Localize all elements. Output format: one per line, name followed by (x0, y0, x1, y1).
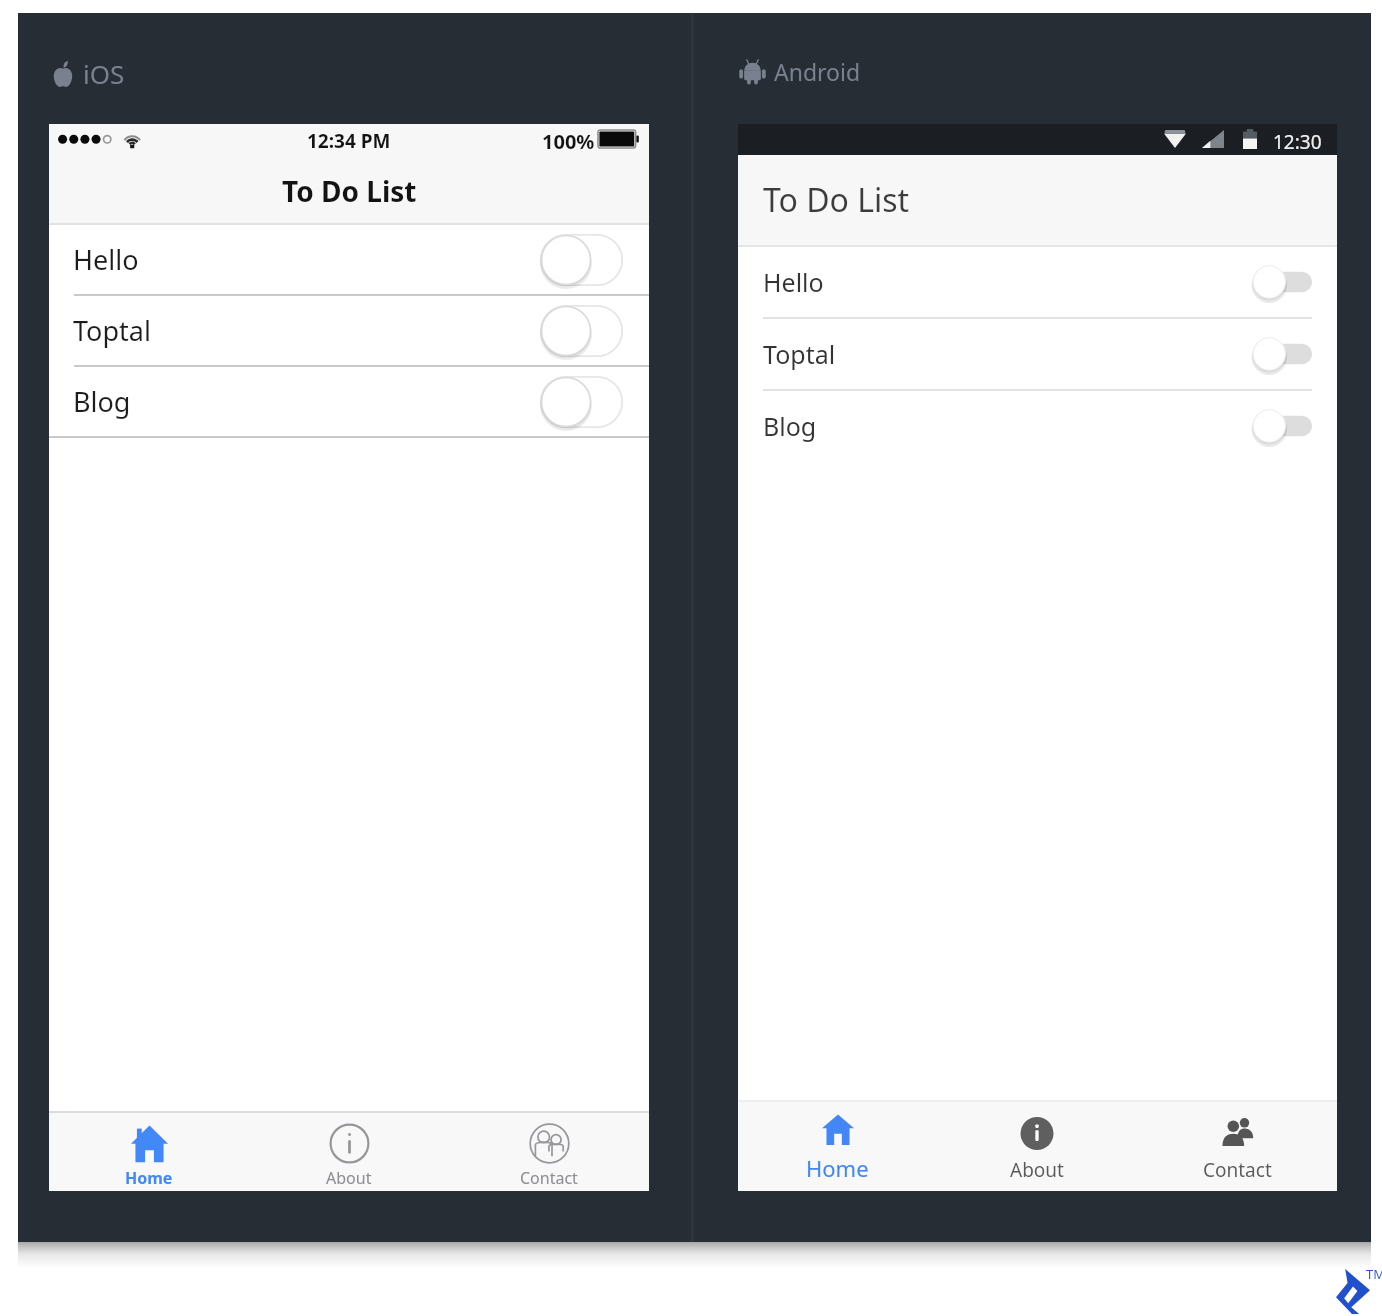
button[interactable]: About (249, 1113, 449, 1191)
button[interactable]: Hello (738, 247, 1337, 317)
button[interactable]: Home (49, 1113, 249, 1191)
button[interactable]: Blog (738, 391, 1337, 461)
staticText: Blog (763, 409, 817, 443)
button[interactable]: Toggle Blog (540, 376, 623, 428)
staticText: Home (806, 1153, 869, 1183)
staticText: Home (125, 1167, 173, 1189)
staticText: Hello (763, 265, 824, 299)
button[interactable]: Hello (49, 225, 649, 294)
staticText: iOS (83, 56, 125, 91)
staticText: 12:34 PM (307, 128, 391, 154)
staticText: About (1010, 1157, 1064, 1183)
staticText: To Do List (282, 172, 417, 210)
button[interactable]: Home (738, 1102, 937, 1191)
button[interactable]: Toggle Hello (1253, 263, 1312, 301)
staticText: Contact (520, 1167, 578, 1189)
staticText: 100% (542, 128, 595, 155)
staticText: Toptal (763, 337, 836, 371)
button[interactable]: Contact (1137, 1102, 1337, 1191)
button[interactable]: Toggle Toptal (540, 305, 623, 357)
button[interactable]: Toggle Toptal (1253, 335, 1312, 373)
staticText: Hello (73, 241, 139, 278)
button[interactable]: Contact (449, 1113, 649, 1191)
staticText: Blog (73, 383, 131, 420)
staticText: Toptal (73, 312, 151, 349)
button[interactable]: Blog (49, 367, 649, 436)
button[interactable]: Toptal (738, 319, 1337, 389)
staticText: To Do List (763, 178, 910, 222)
other: Toptal (1336, 1269, 1370, 1314)
button[interactable]: Toggle Hello (540, 234, 623, 286)
staticText: 12:30 (1273, 129, 1322, 155)
button[interactable]: About (937, 1102, 1137, 1191)
button[interactable]: Toggle Blog (1253, 407, 1312, 445)
button[interactable]: Toptal (49, 296, 649, 365)
staticText: Android (774, 56, 861, 87)
staticText: Contact (1203, 1157, 1272, 1183)
staticText: TM (1366, 1265, 1382, 1283)
staticText: About (326, 1167, 372, 1189)
